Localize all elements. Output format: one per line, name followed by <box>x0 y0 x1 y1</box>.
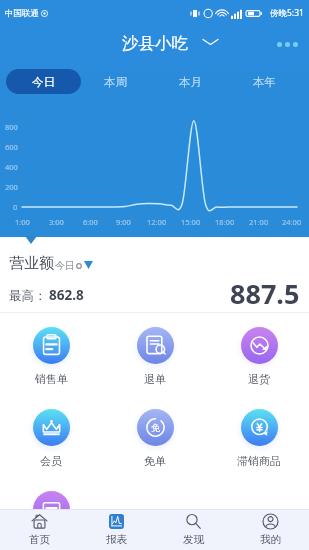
staticText: 本月 <box>179 75 202 89</box>
staticText: 营业额 <box>9 254 54 273</box>
button[interactable]: 库存 <box>4 486 98 550</box>
button[interactable]: 滞销商品 <box>212 404 306 468</box>
staticText: 887.5 <box>230 275 300 312</box>
button[interactable]: 本月 <box>164 69 216 94</box>
button[interactable]: 本周 <box>89 69 141 94</box>
staticText: 400 <box>5 162 18 172</box>
staticText: 862.8 <box>49 286 84 304</box>
staticText: 21:00 <box>249 217 269 227</box>
staticText: 本年 <box>253 75 276 89</box>
button[interactable]: 会员 <box>4 404 98 468</box>
staticText: 滞销商品 <box>237 454 281 468</box>
button[interactable]: 免 <box>108 404 202 468</box>
button[interactable]: 退单 <box>108 322 202 386</box>
staticText: 我的 <box>260 533 281 546</box>
staticText: 库存 <box>40 536 62 550</box>
staticText: 今日 <box>32 75 55 89</box>
button[interactable]: More options <box>277 42 298 47</box>
staticText: 9:00 <box>116 217 131 227</box>
button[interactable]: 沙县小吃 <box>122 33 188 54</box>
button[interactable]: Change shop <box>203 37 218 47</box>
staticText: 15:00 <box>181 217 201 227</box>
button[interactable]: 退货 <box>212 322 306 386</box>
button[interactable]: 我的 <box>232 510 309 550</box>
staticText: 报表 <box>106 533 127 546</box>
staticText: 24:00 <box>282 217 302 227</box>
button[interactable]: 销售单 <box>4 322 98 386</box>
button[interactable]: 本年 <box>238 69 290 94</box>
staticText: 发现 <box>183 533 204 546</box>
staticText: 首页 <box>29 533 50 546</box>
staticText: 中国联通 <box>5 8 39 19</box>
button[interactable]: 营业额 <box>9 254 93 273</box>
staticText: 傍晚5:31 <box>270 7 304 19</box>
staticText: 200 <box>5 182 18 192</box>
staticText: 0 <box>13 202 18 212</box>
staticText: 退货 <box>248 372 270 386</box>
staticText: 本周 <box>104 75 127 89</box>
staticText: 免 <box>151 422 160 433</box>
staticText: 会员 <box>40 454 62 468</box>
staticText: 6:00 <box>83 217 98 227</box>
staticText: 销售单 <box>35 372 68 386</box>
button[interactable]: 发现 <box>155 510 232 550</box>
staticText: 3:00 <box>49 217 64 227</box>
staticText: 今日 <box>55 259 75 272</box>
staticText: 600 <box>5 142 18 152</box>
staticText: 12:00 <box>147 217 167 227</box>
button[interactable]: 报表 <box>78 510 155 550</box>
staticText: 18:00 <box>215 217 235 227</box>
staticText: 最高： <box>9 288 47 304</box>
button[interactable]: 今日 <box>6 69 81 94</box>
staticText: 退单 <box>144 372 166 386</box>
staticText: 沙县小吃 <box>122 33 188 54</box>
staticText: 800 <box>5 122 18 132</box>
staticText: 免单 <box>144 454 166 468</box>
staticText: 1:00 <box>15 217 30 227</box>
button[interactable]: 首页 <box>0 510 78 550</box>
